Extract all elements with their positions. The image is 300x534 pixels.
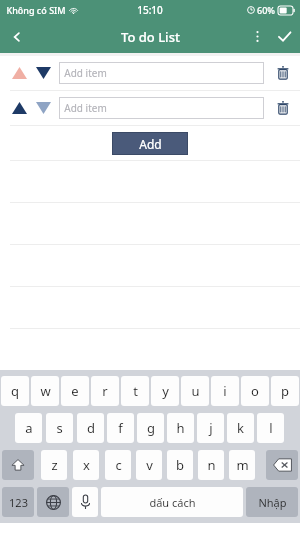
button[interactable]: k — [227, 413, 254, 443]
staticText: m — [236, 456, 249, 474]
button[interactable]: Add — [112, 132, 188, 155]
button[interactable]: c — [105, 450, 131, 480]
staticText: 123 — [9, 495, 28, 510]
staticText: c — [115, 456, 122, 474]
button[interactable]: a — [15, 413, 42, 443]
staticText: a — [25, 419, 33, 437]
staticText: r — [102, 382, 108, 400]
staticText: o — [251, 382, 259, 400]
button[interactable]: b — [167, 450, 193, 480]
staticText: Add — [139, 136, 162, 152]
button[interactable]: e — [61, 376, 89, 406]
button[interactable]: i — [211, 376, 239, 406]
staticText: y — [162, 382, 169, 400]
staticText: Add item — [64, 101, 107, 115]
staticText: j — [209, 419, 213, 437]
staticText: n — [207, 456, 216, 474]
staticText: dấu cách — [149, 495, 196, 510]
staticText: f — [118, 419, 123, 437]
staticText: 60% — [257, 4, 275, 16]
button[interactable]: Back — [0, 20, 33, 53]
button[interactable]: d — [77, 413, 104, 443]
button[interactable]: x — [73, 450, 99, 480]
button[interactable]: Add item — [59, 97, 264, 119]
staticText: e — [71, 382, 79, 400]
button[interactable]: z — [41, 450, 67, 480]
staticText: d — [87, 419, 95, 437]
button[interactable]: key — [72, 487, 98, 517]
button[interactable]: p — [271, 376, 299, 406]
staticText: v — [146, 456, 153, 474]
staticText: g — [147, 419, 155, 437]
button[interactable]: l — [257, 413, 284, 443]
button[interactable]: 123 — [2, 487, 34, 517]
button[interactable]: key — [2, 450, 34, 480]
button[interactable]: Move down — [32, 97, 54, 119]
staticText: p — [281, 382, 289, 400]
staticText: Nhập — [258, 495, 287, 510]
staticText: s — [56, 419, 63, 437]
button[interactable]: More options — [246, 20, 268, 53]
button[interactable]: o — [241, 376, 269, 406]
staticText: 15:10 — [137, 3, 163, 17]
staticText: x — [83, 456, 90, 474]
button[interactable]: Move down — [32, 62, 54, 84]
button[interactable]: y — [151, 376, 179, 406]
button[interactable]: s — [46, 413, 73, 443]
staticText: u — [191, 382, 200, 400]
button[interactable]: f — [107, 413, 134, 443]
staticText: h — [176, 419, 185, 437]
staticText: z — [51, 456, 58, 474]
button[interactable]: Delete — [272, 97, 294, 119]
button[interactable]: key — [37, 487, 69, 517]
button[interactable]: q — [1, 376, 29, 406]
button[interactable]: key — [266, 450, 298, 480]
staticText: t — [133, 382, 138, 400]
button[interactable]: dấu cách — [101, 487, 243, 517]
button[interactable]: m — [229, 450, 255, 480]
staticText: To do List — [121, 28, 180, 46]
button[interactable]: n — [198, 450, 224, 480]
staticText: Add item — [64, 66, 107, 80]
button[interactable]: Add item — [59, 62, 264, 84]
button[interactable]: r — [91, 376, 119, 406]
button[interactable]: v — [136, 450, 162, 480]
button[interactable]: Done — [268, 20, 300, 53]
staticText: l — [269, 419, 273, 437]
staticText: b — [176, 456, 184, 474]
button[interactable]: u — [181, 376, 209, 406]
staticText: w — [40, 382, 51, 400]
button[interactable]: w — [31, 376, 59, 406]
button[interactable]: h — [167, 413, 194, 443]
staticText: Không có SIM — [6, 4, 66, 16]
button[interactable]: g — [137, 413, 164, 443]
staticText: k — [237, 419, 244, 437]
button[interactable]: Delete — [272, 62, 294, 84]
button[interactable]: Move up — [8, 62, 30, 84]
button[interactable]: j — [197, 413, 224, 443]
button[interactable]: t — [121, 376, 149, 406]
button[interactable]: Nhập — [246, 487, 298, 517]
button[interactable]: Move up — [8, 97, 30, 119]
staticText: i — [223, 382, 227, 400]
staticText: q — [11, 382, 19, 400]
